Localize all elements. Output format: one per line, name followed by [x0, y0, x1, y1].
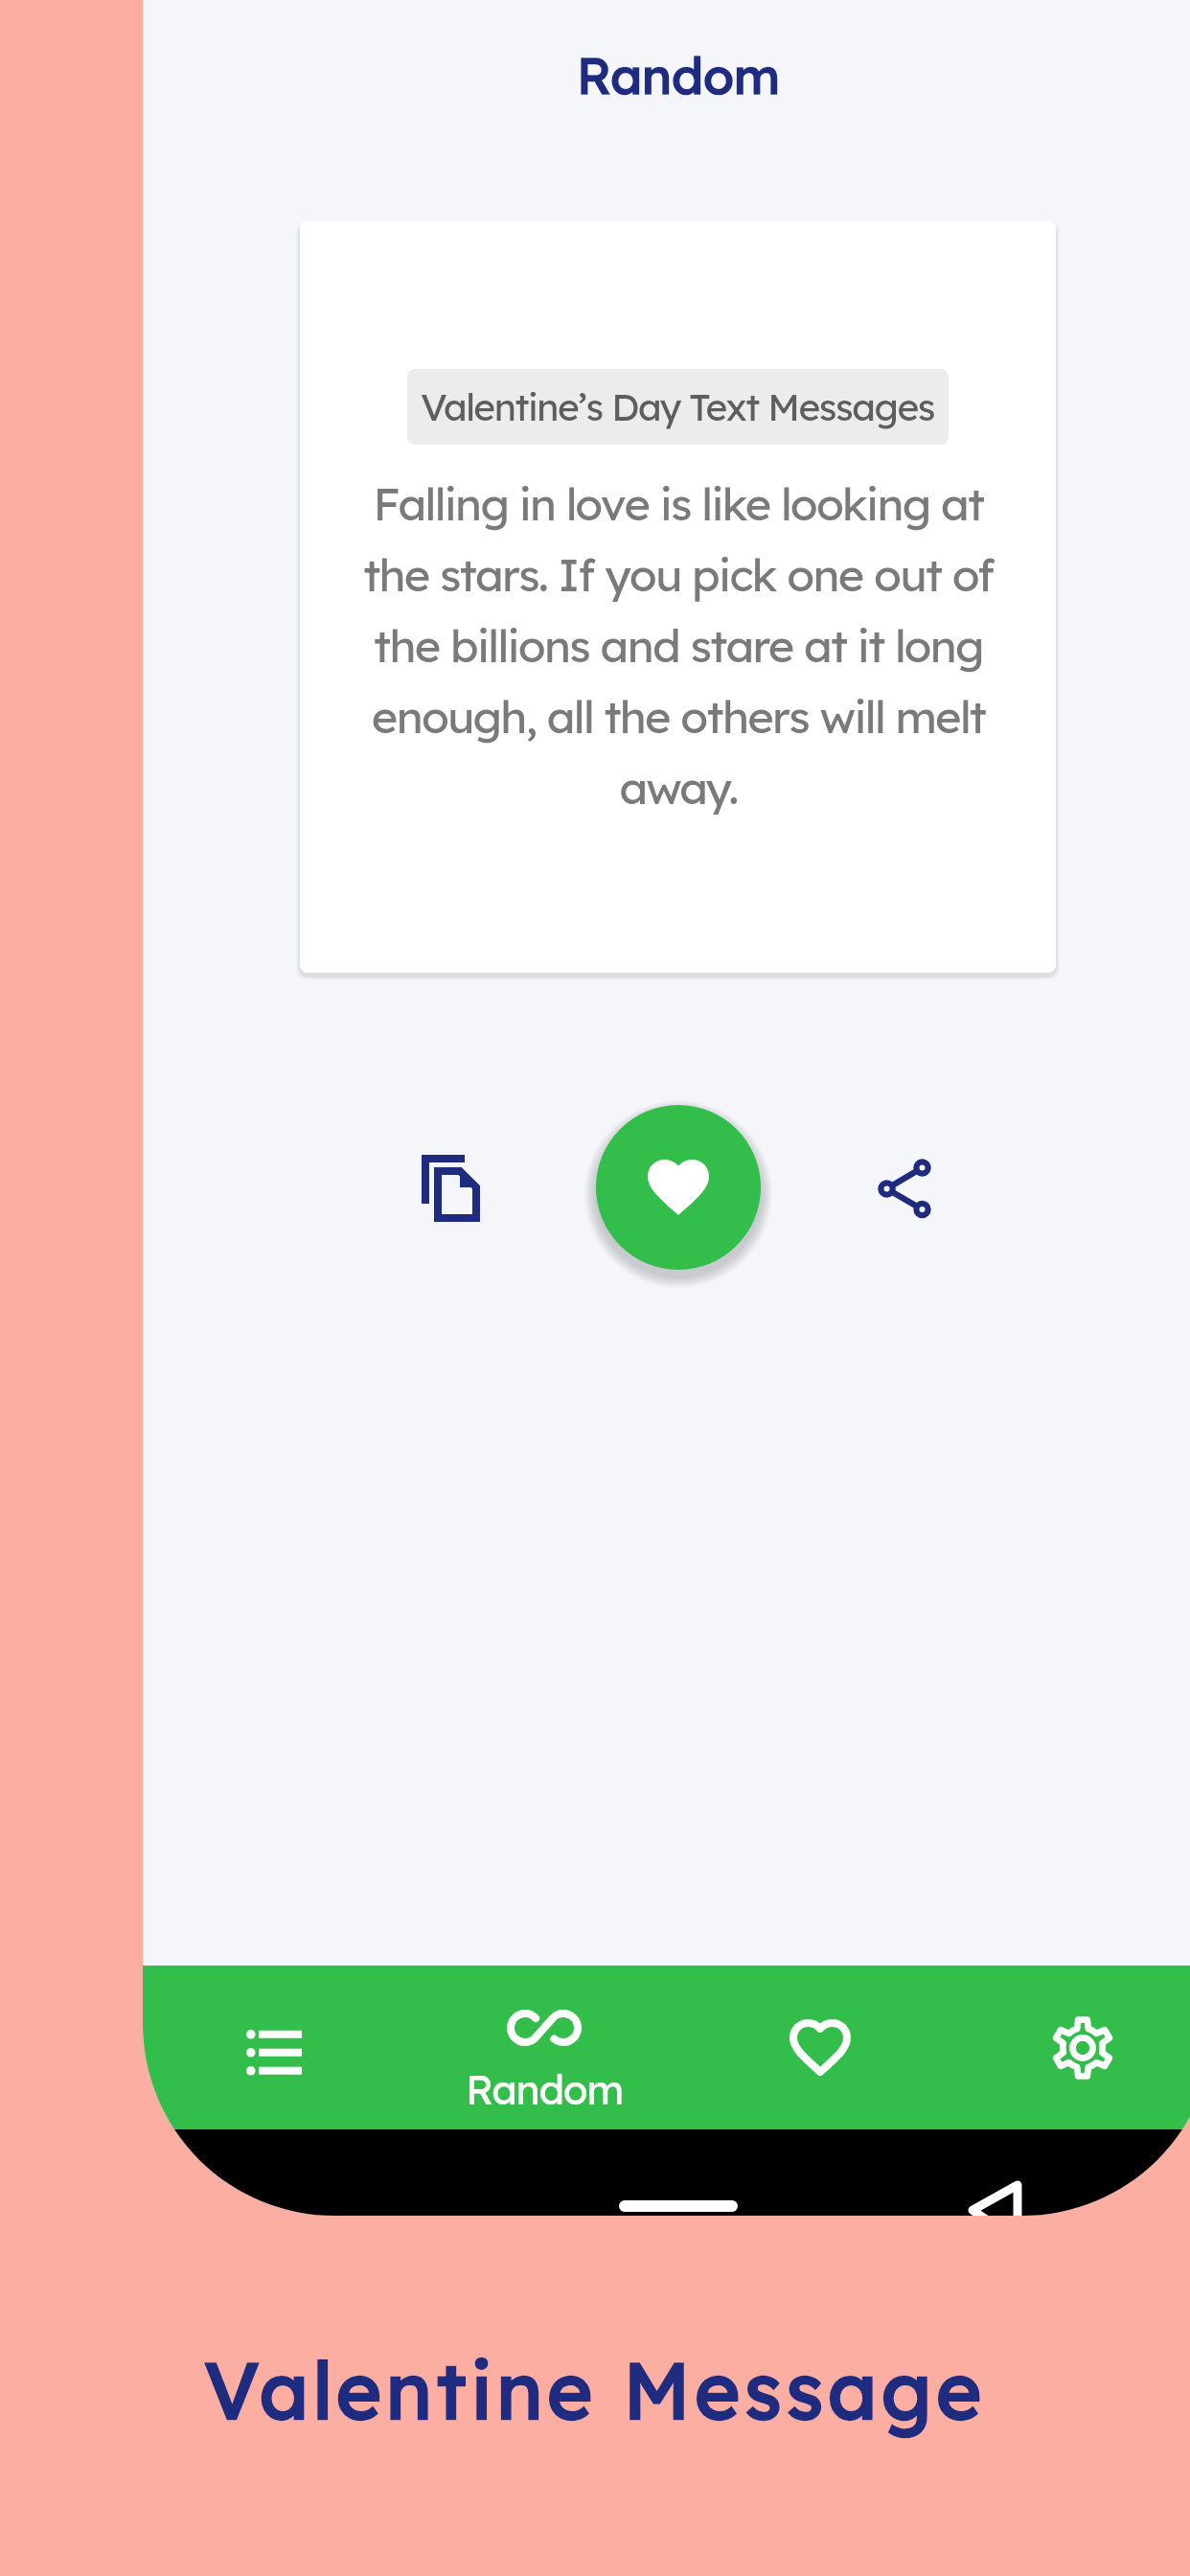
staticText: Valentine’s Day Text Messages	[421, 383, 935, 430]
button[interactable]: Share	[876, 1159, 933, 1218]
button[interactable]: Valentine’s Day Text Messages	[300, 221, 1056, 973]
staticText: Falling in love is like looking at the s…	[362, 475, 995, 816]
staticText: Valentine Message	[0, 2341, 1190, 2438]
button[interactable]: Random	[410, 1966, 677, 2129]
staticText: Random	[143, 44, 1190, 106]
button[interactable]: Message list	[143, 1966, 410, 2129]
button[interactable]: Favourites	[677, 1966, 946, 2129]
staticText: Random	[466, 2064, 623, 2115]
button[interactable]: Copy message	[419, 1150, 488, 1229]
button[interactable]: Settings	[946, 1966, 1190, 2129]
button[interactable]: Favourite	[596, 1105, 761, 1270]
